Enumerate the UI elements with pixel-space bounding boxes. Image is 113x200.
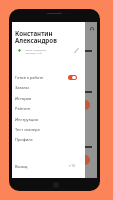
button[interactable]: Support bbox=[90, 27, 94, 31]
button[interactable]: Заказы bbox=[15, 82, 77, 92]
staticText: Тест сканера bbox=[15, 127, 40, 132]
staticText: Профиль bbox=[15, 137, 33, 142]
button[interactable]: История bbox=[15, 93, 77, 103]
staticText: Инструкция bbox=[15, 117, 39, 122]
button[interactable]: Выход bbox=[15, 161, 76, 171]
staticText: улица Академика Челомея, 12б bbox=[25, 48, 47, 55]
staticText: Заказы bbox=[15, 85, 29, 90]
button[interactable]: Тест сканера bbox=[15, 124, 77, 134]
staticText: Готов к работе bbox=[15, 75, 68, 80]
button[interactable]: Готов к работе bbox=[15, 72, 77, 82]
staticText: Выход bbox=[15, 164, 69, 169]
button[interactable]: Инструкция bbox=[15, 114, 77, 124]
button[interactable]: Профиль bbox=[15, 134, 77, 144]
staticText: Рейтинг bbox=[15, 106, 31, 111]
staticText: История bbox=[15, 96, 32, 101]
staticText: Константин Александров bbox=[15, 29, 57, 45]
button[interactable]: Edit profile bbox=[72, 46, 80, 54]
button[interactable]: Рейтинг bbox=[15, 103, 77, 113]
staticText: v 1.0 bbox=[69, 164, 76, 168]
